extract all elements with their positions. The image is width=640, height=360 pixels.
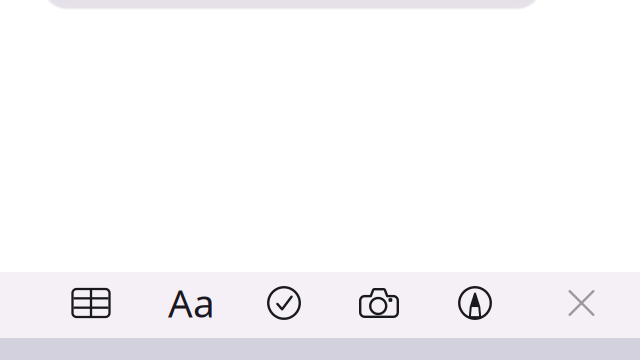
button[interactable]: Markup [426, 272, 522, 338]
button[interactable]: Table [42, 272, 138, 338]
button[interactable]: Hide keyboard [522, 272, 640, 338]
button[interactable]: Insert photo [330, 272, 426, 338]
button[interactable]: Checklist [234, 272, 330, 338]
staticText: Aa [168, 277, 215, 328]
button[interactable]: Format [138, 272, 234, 338]
